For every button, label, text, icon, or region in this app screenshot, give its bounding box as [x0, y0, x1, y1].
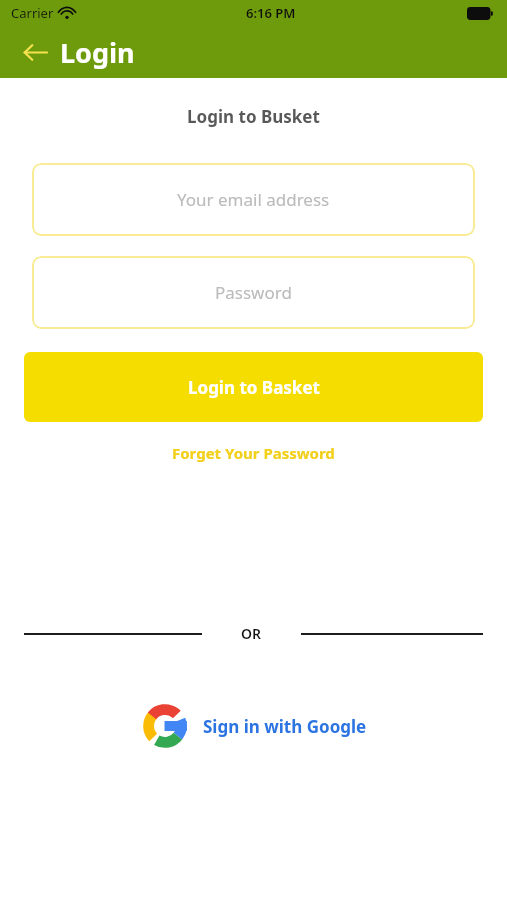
staticText: Carrier	[11, 4, 54, 22]
staticText: OR	[241, 624, 262, 643]
button[interactable]: Your email address	[32, 163, 475, 236]
button[interactable]: Back	[16, 33, 54, 71]
staticText: Login to Basket	[188, 376, 320, 399]
button[interactable]: Sign in with Google	[0, 702, 507, 750]
button[interactable]: Password	[32, 256, 475, 329]
staticText: Your email address	[177, 188, 330, 211]
staticText: Login	[60, 34, 135, 71]
staticText: Sign in with Google	[203, 715, 367, 738]
staticText: 6:16 PM	[246, 4, 296, 22]
staticText: Password	[215, 281, 292, 304]
button[interactable]: Login to Basket	[24, 352, 483, 422]
button[interactable]: Forget Your Password	[0, 443, 507, 463]
staticText: Forget Your Password	[172, 443, 335, 463]
staticText: Login to Busket	[0, 105, 507, 128]
